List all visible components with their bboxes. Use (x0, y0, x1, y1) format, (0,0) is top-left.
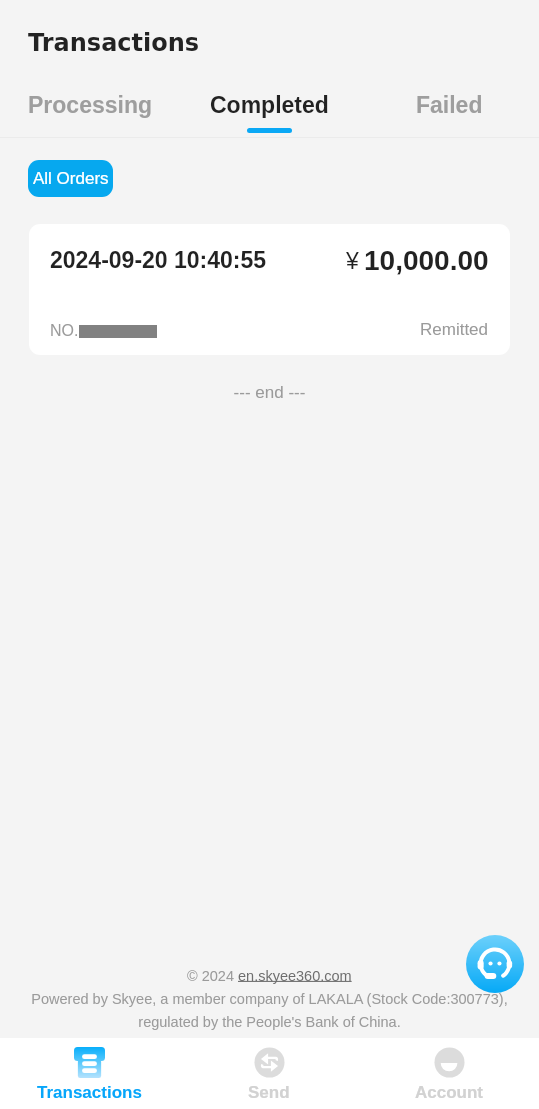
button[interactable]: en.skyee360.com (238, 968, 352, 984)
staticText: Transactions (37, 1083, 142, 1102)
staticText: Completed (210, 92, 329, 118)
staticText: Account (415, 1083, 483, 1102)
staticText: 2024-09-20 10:40:55 (50, 247, 267, 273)
staticText: Remitted (420, 320, 489, 339)
staticText: Powered by Skyee, a member company of LA… (0, 991, 539, 1031)
button[interactable]: Customer service (466, 935, 524, 993)
staticText: All Orders (33, 169, 109, 188)
staticText: --- end --- (0, 383, 539, 402)
staticText: Transactions (28, 29, 200, 57)
button[interactable]: Processing (0, 89, 179, 141)
staticText: © 2024 (187, 968, 238, 984)
button[interactable]: Completed (179, 89, 359, 141)
button[interactable]: Transactions (0, 1038, 179, 1109)
staticText: ¥ (346, 248, 359, 274)
button[interactable]: Send (179, 1038, 359, 1109)
button[interactable]: 2024-09-20 10:40:55 (29, 224, 510, 355)
button[interactable]: Failed (359, 89, 539, 141)
staticText: NO. (50, 322, 79, 340)
staticText: 10,000.00 (364, 245, 489, 276)
staticText: Processing (28, 92, 152, 118)
button[interactable]: Account (359, 1038, 539, 1109)
staticText: Send (248, 1083, 290, 1102)
staticText: Failed (416, 92, 483, 118)
button[interactable]: All Orders (28, 160, 113, 197)
